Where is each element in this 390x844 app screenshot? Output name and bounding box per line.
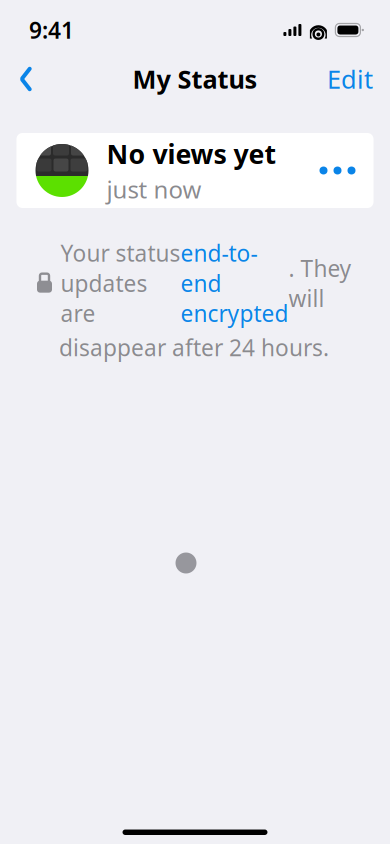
button[interactable]: No views yet bbox=[16, 133, 373, 208]
button[interactable]: Edit bbox=[327, 57, 373, 101]
staticText: . They will bbox=[288, 253, 351, 313]
staticText: just now bbox=[106, 173, 201, 205]
staticText: No views yet bbox=[106, 136, 276, 171]
button[interactable]: end-to-end encrypted bbox=[180, 238, 288, 328]
button[interactable]: Back bbox=[4, 57, 48, 101]
staticText: 9:41 bbox=[29, 15, 74, 45]
staticText: Your status updates are bbox=[60, 238, 180, 328]
staticText: end-to-end encrypted bbox=[180, 238, 288, 328]
staticText: Edit bbox=[327, 62, 373, 96]
staticText: disappear after 24 hours. bbox=[59, 332, 329, 362]
staticText: My Status bbox=[132, 62, 257, 96]
